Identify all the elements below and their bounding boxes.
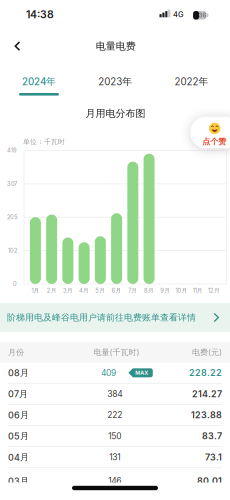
staticText: 307 <box>7 180 17 187</box>
staticText: 2024年 <box>22 75 56 88</box>
staticText: 单位：千瓦时 <box>23 137 65 146</box>
staticText: 222 <box>107 410 122 420</box>
staticText: 4G <box>173 10 184 19</box>
staticText: 3月 <box>63 287 73 294</box>
staticText: 14:38 <box>26 8 54 21</box>
staticText: 80.01 <box>197 476 222 486</box>
staticText: 04月 <box>8 451 29 463</box>
button[interactable]: Back <box>7 38 27 55</box>
staticText: 123.88 <box>191 410 222 420</box>
staticText: 2月 <box>47 287 57 294</box>
staticText: 146 <box>108 476 121 486</box>
staticText: 6月 <box>112 287 122 294</box>
staticText: 36 <box>199 12 207 19</box>
staticText: 电量电费 <box>96 40 136 52</box>
staticText: 1月 <box>31 287 39 294</box>
staticText: 102 <box>8 247 17 254</box>
staticText: 阶梯用电及峰谷电用户请前往电费账单查看详情 <box>7 312 196 323</box>
staticText: 12月 <box>208 287 220 294</box>
staticText: 03月 <box>8 475 29 487</box>
button[interactable]: 阶梯用电及峰谷电用户请前往电费账单查看详情 <box>0 303 230 332</box>
staticText: 8月 <box>144 287 154 294</box>
button[interactable]: 点个赞 <box>190 117 230 148</box>
staticText: 05月 <box>8 430 29 442</box>
staticText: 08月 <box>8 367 29 378</box>
staticText: 2022年 <box>174 75 208 88</box>
staticText: 10月 <box>176 287 188 294</box>
staticText: 电费(元) <box>192 347 222 357</box>
staticText: MAX <box>135 370 148 376</box>
staticText: 384 <box>107 389 122 399</box>
staticText: 点个赞 <box>202 136 226 147</box>
staticText: 131 <box>109 452 120 462</box>
staticText: 4月 <box>79 287 89 294</box>
staticText: 409 <box>101 368 116 378</box>
staticText: 7月 <box>128 287 137 294</box>
staticText: 2023年 <box>98 75 132 88</box>
button[interactable]: 2023年 <box>77 68 153 94</box>
button[interactable]: 2022年 <box>153 68 229 94</box>
staticText: 83.7 <box>202 431 222 442</box>
staticText: 205 <box>7 214 17 221</box>
staticText: 9月 <box>160 287 170 294</box>
staticText: 150 <box>108 431 121 441</box>
staticText: 月份 <box>8 347 24 357</box>
button[interactable]: 2024年 <box>1 68 77 94</box>
staticText: 228.22 <box>189 367 222 378</box>
staticText: 月用电分布图 <box>85 107 145 120</box>
staticText: 5月 <box>95 287 105 294</box>
staticText: 214.27 <box>192 388 222 399</box>
staticText: 73.1 <box>205 452 222 463</box>
staticText: 06月 <box>8 409 29 421</box>
staticText: 11月 <box>193 287 203 294</box>
staticText: 电量(千瓦时) <box>93 347 139 357</box>
staticText: 0 <box>13 281 17 287</box>
staticText: 07月 <box>8 388 28 399</box>
staticText: 419 <box>7 147 17 154</box>
